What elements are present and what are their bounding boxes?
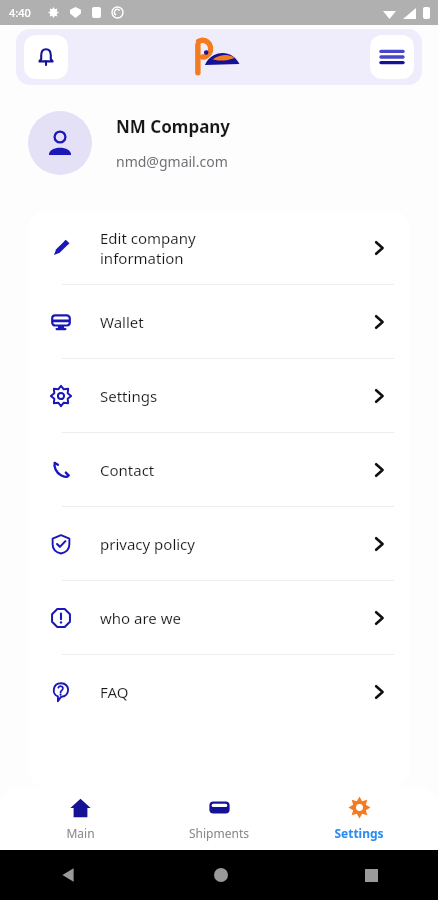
button[interactable]: Settings	[28, 359, 410, 432]
button[interactable]: Settings	[299, 790, 419, 847]
staticText: Contact	[100, 460, 370, 480]
button[interactable]: Edit company information	[28, 211, 410, 284]
staticText: Main	[66, 825, 95, 841]
staticText: nmd@gmail.com	[116, 152, 228, 171]
other: Home	[214, 868, 228, 882]
staticText: 4:40	[9, 5, 31, 20]
button[interactable]: Shipments	[159, 790, 279, 847]
other: Back	[60, 867, 76, 883]
staticText: Settings	[334, 825, 384, 841]
staticText: FAQ	[100, 682, 370, 702]
button[interactable]: Menu	[370, 35, 414, 79]
button[interactable]: who are we	[28, 581, 410, 654]
staticText: who are we	[100, 608, 370, 628]
button[interactable]: Notifications	[24, 35, 68, 79]
staticText: privacy policy	[100, 534, 370, 554]
staticText: Settings	[100, 386, 370, 406]
staticText: Shipments	[189, 825, 249, 841]
button[interactable]: Contact	[28, 433, 410, 506]
button[interactable]: Main	[20, 790, 140, 847]
button[interactable]: Wallet	[28, 285, 410, 358]
staticText: NM Company	[116, 115, 231, 138]
button[interactable]: privacy policy	[28, 507, 410, 580]
staticText: Wallet	[100, 312, 370, 332]
staticText: Edit company information	[100, 228, 370, 268]
button[interactable]: FAQ	[28, 655, 410, 728]
